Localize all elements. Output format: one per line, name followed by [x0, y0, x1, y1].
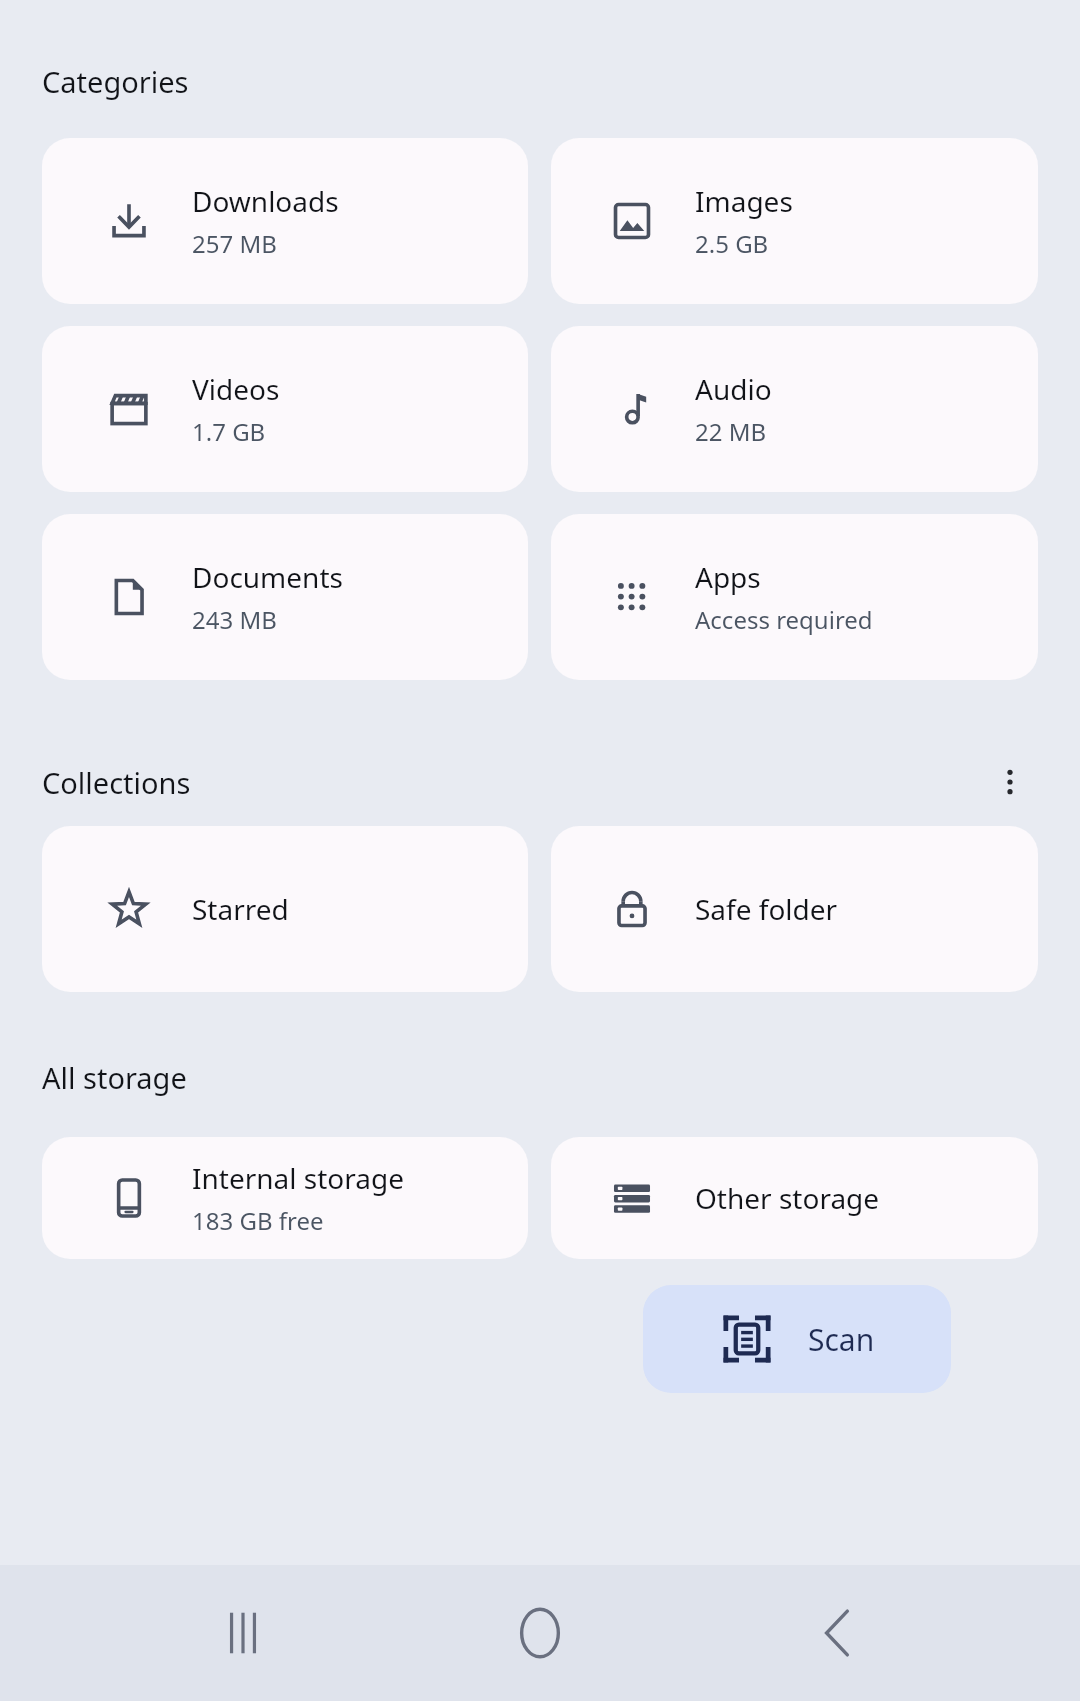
button[interactable]: Recent apps — [188, 1578, 298, 1688]
staticText: Collections — [42, 763, 191, 802]
staticText: Downloads — [192, 182, 339, 220]
button[interactable]: Videos — [42, 326, 528, 492]
staticText: 2.5 GB — [695, 227, 769, 260]
staticText: Categories — [42, 62, 189, 101]
button[interactable]: Home — [485, 1578, 595, 1688]
staticText: 22 MB — [695, 415, 767, 448]
staticText: Internal storage — [192, 1159, 404, 1197]
button[interactable]: Other storage — [551, 1137, 1038, 1259]
staticText: Audio — [695, 370, 772, 408]
button[interactable]: Starred — [42, 826, 528, 992]
staticText: Safe folder — [695, 890, 838, 928]
button[interactable]: Images — [551, 138, 1038, 304]
button[interactable]: More options — [982, 754, 1038, 810]
staticText: 243 MB — [192, 603, 277, 636]
staticText: Documents — [192, 558, 343, 596]
staticText: All storage — [42, 1058, 187, 1097]
staticText: Scan — [808, 1319, 875, 1360]
button[interactable]: Documents — [42, 514, 528, 680]
staticText: Apps — [695, 558, 761, 596]
staticText: Starred — [192, 890, 289, 928]
button[interactable]: Apps — [551, 514, 1038, 680]
staticText: 257 MB — [192, 227, 277, 260]
staticText: Other storage — [695, 1179, 880, 1217]
staticText: Access required — [695, 603, 873, 636]
button[interactable]: Audio — [551, 326, 1038, 492]
button[interactable]: Safe folder — [551, 826, 1038, 992]
staticText: Videos — [192, 370, 280, 408]
button[interactable]: Internal storage — [42, 1137, 528, 1259]
button[interactable]: Downloads — [42, 138, 528, 304]
staticText: 183 GB free — [192, 1204, 324, 1237]
button[interactable]: Back — [783, 1578, 893, 1688]
staticText: Images — [695, 182, 793, 220]
staticText: 1.7 GB — [192, 415, 266, 448]
button[interactable]: Scan — [643, 1285, 951, 1393]
